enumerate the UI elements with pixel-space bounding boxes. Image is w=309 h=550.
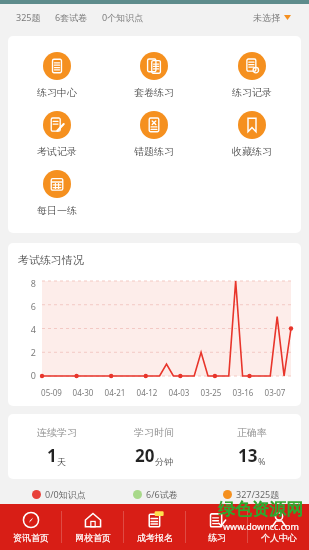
staticText: 6 xyxy=(18,300,36,312)
staticText: 每日一练 xyxy=(37,204,77,217)
staticText: 327/325题 xyxy=(236,488,280,500)
staticText: 资讯首页 xyxy=(13,532,49,543)
button[interactable]: 学习时间 xyxy=(105,424,203,469)
staticText: 学习时间 xyxy=(134,426,174,439)
staticText: 325题 xyxy=(16,11,41,23)
staticText: 8 xyxy=(18,277,36,289)
button[interactable]: 练习 xyxy=(186,504,247,550)
staticText: 0/0知识点 xyxy=(45,488,86,500)
staticText: 05-09 xyxy=(36,387,67,398)
staticText: 练习中心 xyxy=(37,86,77,99)
staticText: 个人中心 xyxy=(261,532,297,543)
button[interactable]: 连续学习 xyxy=(8,424,105,469)
staticText: 正确率 xyxy=(237,426,267,439)
staticText: 04-30 xyxy=(67,387,99,398)
staticText: 04-21 xyxy=(99,387,131,398)
button[interactable]: 未选择 xyxy=(251,10,293,25)
button[interactable]: 收藏练习 xyxy=(203,105,301,164)
staticText: 未选择 xyxy=(253,12,280,23)
staticText: 套卷练习 xyxy=(134,86,174,99)
staticText: 0 xyxy=(18,369,36,381)
staticText: 考试记录 xyxy=(37,145,77,158)
button[interactable]: 成考报名 xyxy=(124,504,185,550)
staticText: 错题练习 xyxy=(134,145,174,158)
staticText: 分钟 xyxy=(155,456,173,467)
staticText: 0个知识点 xyxy=(102,11,144,23)
button[interactable]: 网校首页 xyxy=(62,504,123,550)
staticText: 成考报名 xyxy=(137,532,173,543)
staticText: 天 xyxy=(57,456,66,467)
staticText: 03-07 xyxy=(259,387,291,398)
staticText: 网校首页 xyxy=(75,532,111,543)
button[interactable]: 套卷练习 xyxy=(105,46,203,105)
button[interactable]: 练习中心 xyxy=(8,46,105,105)
staticText: 练习 xyxy=(208,532,226,543)
staticText: 连续学习 xyxy=(37,426,77,439)
staticText: 6套试卷 xyxy=(55,11,88,23)
staticText: 1 xyxy=(47,444,57,467)
staticText: 03-25 xyxy=(195,387,227,398)
staticText: 13 xyxy=(238,444,258,467)
staticText: % xyxy=(258,455,266,467)
button[interactable]: 每日一练 xyxy=(8,164,105,223)
staticText: 4 xyxy=(18,323,36,335)
button[interactable]: 考试记录 xyxy=(8,105,105,164)
staticText: 04-12 xyxy=(131,387,163,398)
staticText: 20 xyxy=(135,444,155,467)
button[interactable]: 练习记录 xyxy=(203,46,301,105)
staticText: 03-16 xyxy=(227,387,259,398)
button[interactable]: 错题练习 xyxy=(105,105,203,164)
staticText: 04-03 xyxy=(163,387,195,398)
staticText: 绿色资源网 xyxy=(218,499,303,520)
staticText: 收藏练习 xyxy=(232,145,272,158)
staticText: 考试练习情况 xyxy=(18,253,84,267)
staticText: 2 xyxy=(18,346,36,358)
staticText: 6/6试卷 xyxy=(146,488,178,500)
staticText: 练习记录 xyxy=(232,86,272,99)
button[interactable]: 个人中心 xyxy=(248,504,309,550)
button[interactable]: 正确率 xyxy=(203,424,301,469)
button[interactable]: 资讯首页 xyxy=(0,504,61,550)
staticText: www.downcc.com xyxy=(223,520,299,532)
